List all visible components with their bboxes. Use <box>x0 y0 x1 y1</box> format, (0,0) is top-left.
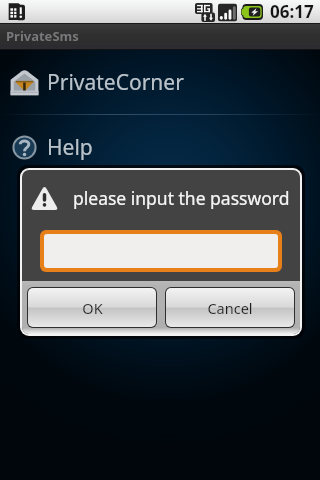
button[interactable] <box>44 234 278 268</box>
button[interactable]: Help <box>0 115 320 179</box>
staticText: Cancel <box>207 298 253 318</box>
staticText: please input the password <box>73 186 290 210</box>
staticText: Help <box>47 133 93 162</box>
staticText: OK <box>82 298 103 318</box>
staticText: PrivateSms <box>6 27 79 45</box>
button[interactable]: OK <box>28 288 156 327</box>
staticText: PrivateCorner <box>47 68 184 97</box>
staticText: 06:17 <box>270 0 314 23</box>
button[interactable]: Cancel <box>166 288 294 327</box>
button[interactable]: PrivateCorner <box>0 50 320 114</box>
